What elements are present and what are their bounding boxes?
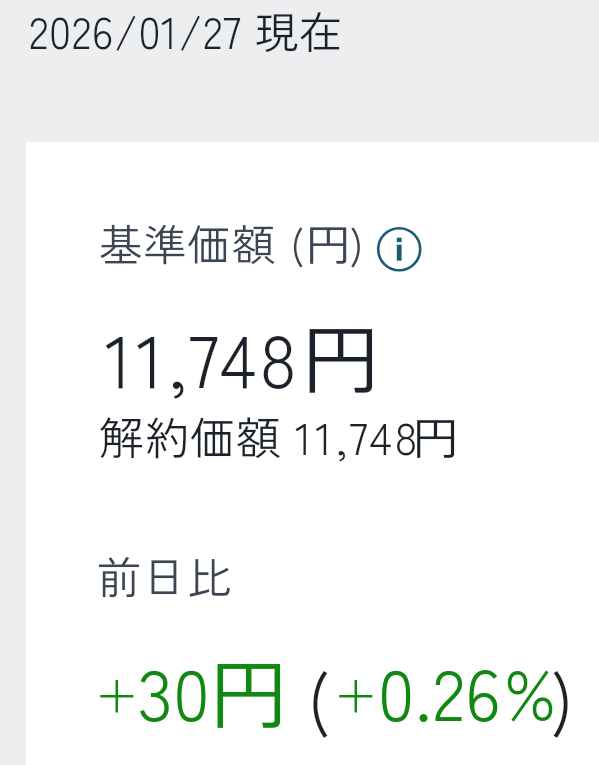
- staticText: 30: [138, 637, 211, 741]
- staticText: 円: [207, 635, 291, 745]
- button[interactable]: Information: [377, 227, 423, 273]
- staticText: (: [290, 211, 305, 274]
- staticText: +: [94, 657, 140, 729]
- staticText: 円: [304, 211, 353, 274]
- staticText: 解約価額 11,748: [99, 403, 421, 468]
- staticText: %: [504, 641, 557, 739]
- staticText: (: [307, 646, 331, 747]
- staticText: 11,748: [105, 303, 301, 409]
- staticText: ): [349, 211, 364, 274]
- staticText: 円: [299, 300, 383, 410]
- staticText: 円: [411, 403, 462, 468]
- staticText: 前日比: [97, 543, 233, 607]
- staticText: 2026/01/27 現在: [29, 0, 344, 61]
- staticText: ): [550, 646, 574, 747]
- staticText: 0.26: [378, 637, 502, 741]
- staticText: +: [333, 657, 379, 729]
- staticText: 基準価額: [99, 211, 277, 274]
